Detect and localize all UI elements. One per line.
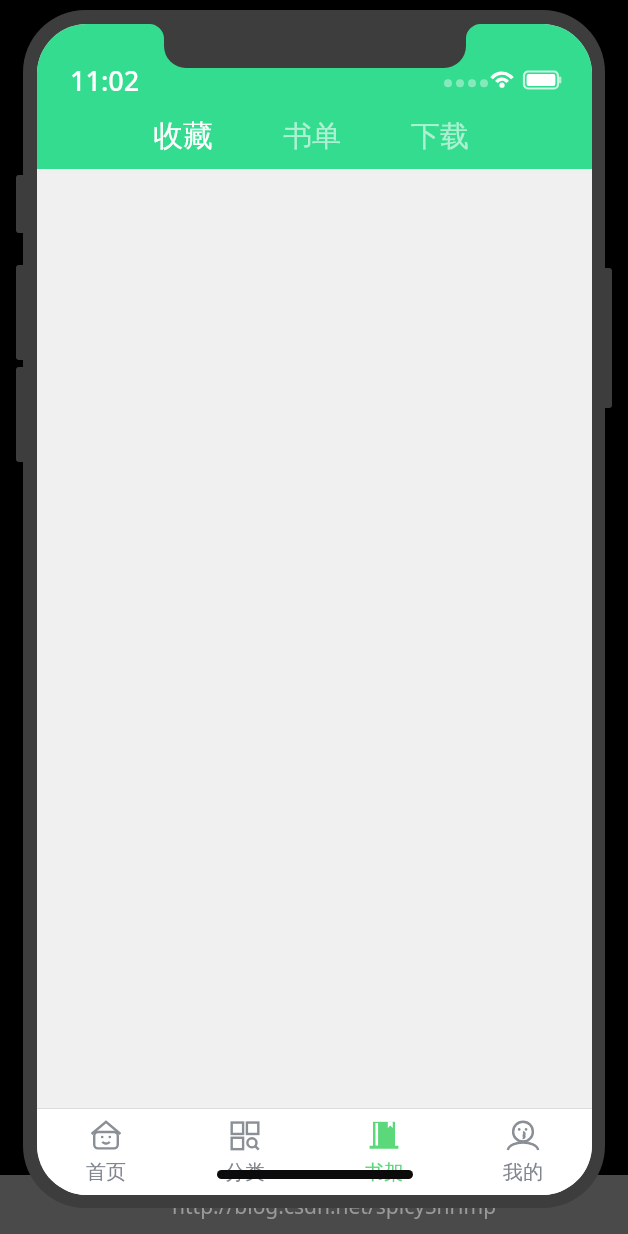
staticText: 书架	[364, 1160, 404, 1185]
button[interactable]: 书架	[314, 1109, 453, 1194]
button[interactable]: 下载	[407, 103, 473, 169]
button[interactable]: 首页	[37, 1109, 175, 1194]
button[interactable]: 书单	[279, 103, 345, 169]
staticText: 首页	[86, 1160, 126, 1185]
staticText: 书单	[283, 118, 341, 155]
button[interactable]: 分类	[175, 1109, 314, 1194]
staticText: 收藏	[153, 117, 213, 155]
staticText: http://blog.csdn.net/spicyShrimp	[172, 1192, 497, 1221]
button[interactable]: 收藏	[149, 103, 217, 169]
staticText: 下载	[411, 118, 469, 155]
staticText: 11:02	[70, 62, 140, 99]
staticText: 分类	[225, 1160, 265, 1185]
button[interactable]: 我的	[453, 1109, 592, 1194]
staticText: 我的	[503, 1160, 543, 1185]
